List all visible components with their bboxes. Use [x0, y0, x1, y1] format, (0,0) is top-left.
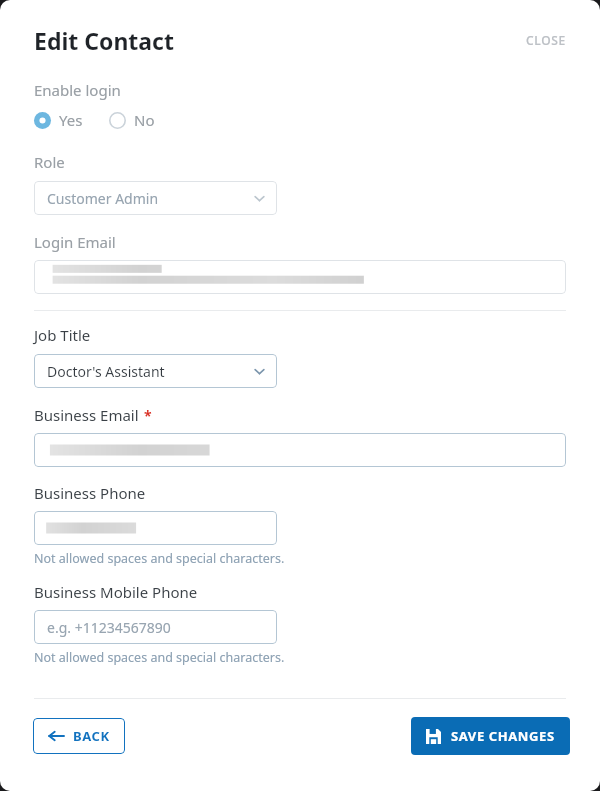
button[interactable] [34, 433, 566, 467]
staticText: Job Title [34, 325, 91, 345]
button[interactable]: CLOSE [520, 26, 572, 54]
staticText: * [144, 406, 152, 425]
staticText: Not allowed spaces and special character… [34, 550, 285, 567]
staticText: No [134, 110, 155, 130]
other: Save [426, 729, 441, 744]
staticText: Yes [59, 110, 83, 130]
staticText: Customer Admin [47, 189, 254, 208]
staticText: Login Email [34, 232, 116, 252]
staticText: Not allowed spaces and special character… [34, 649, 285, 666]
staticText: Business Phone [34, 483, 146, 503]
staticText: CLOSE [526, 32, 566, 48]
button[interactable]: Back [33, 718, 125, 754]
button[interactable]: e.g. +11234567890 [34, 610, 277, 644]
button[interactable]: Save [411, 717, 570, 755]
staticText: Edit Contact [34, 25, 174, 56]
button[interactable]: Doctor's Assistant [34, 354, 277, 388]
staticText: SAVE CHANGES [451, 727, 555, 745]
staticText: Role [34, 152, 65, 172]
button[interactable] [34, 511, 277, 545]
button[interactable] [34, 260, 566, 294]
staticText: Enable login [34, 80, 121, 100]
staticText: e.g. +11234567890 [47, 618, 171, 637]
button[interactable]: No [109, 110, 157, 130]
button[interactable]: Yes [34, 110, 85, 130]
staticText: Business Mobile Phone [34, 582, 198, 602]
staticText: Business Email [34, 405, 139, 425]
staticText: BACK [73, 727, 110, 745]
other: Back [48, 728, 64, 744]
button[interactable]: Customer Admin [34, 181, 277, 215]
staticText: Doctor's Assistant [47, 362, 254, 381]
